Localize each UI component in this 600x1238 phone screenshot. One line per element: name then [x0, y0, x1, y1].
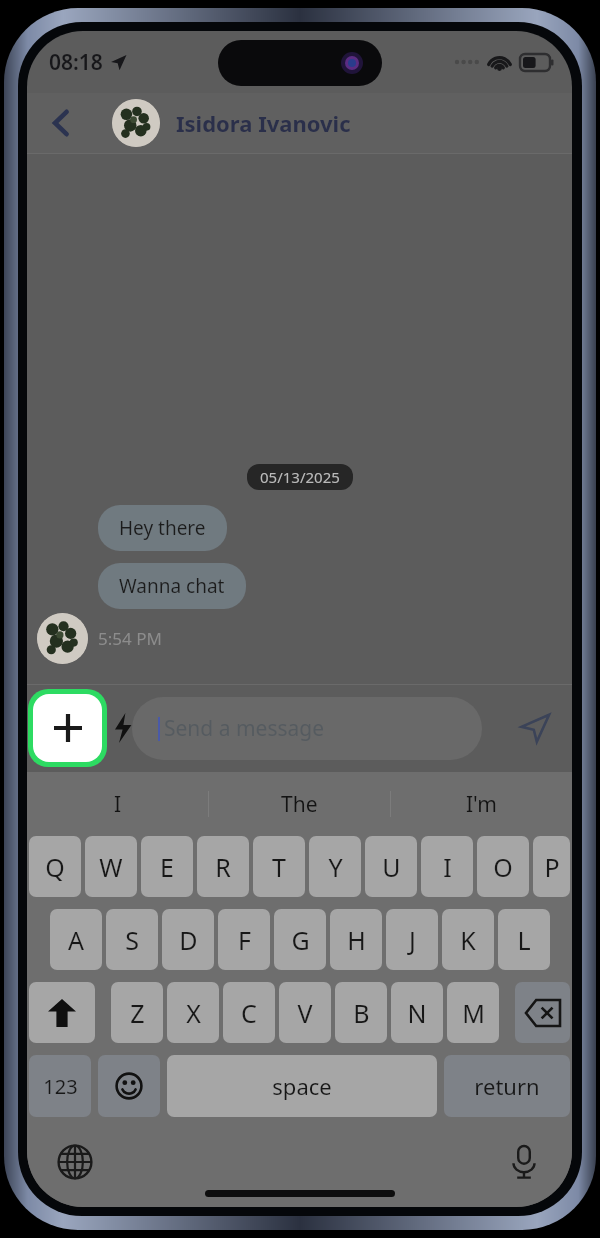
- button[interactable]: U: [365, 836, 417, 897]
- staticText: J: [409, 923, 416, 957]
- staticText: K: [460, 923, 476, 957]
- staticText: P: [544, 850, 560, 884]
- button[interactable]: 123: [29, 1055, 91, 1117]
- button[interactable]: S: [106, 909, 158, 970]
- staticText: 08:18: [49, 48, 103, 77]
- staticText: Q: [45, 850, 65, 884]
- button[interactable]: H: [330, 909, 382, 970]
- staticText: G: [291, 923, 310, 957]
- button[interactable]: D: [162, 909, 214, 970]
- button[interactable]: A: [50, 909, 102, 970]
- button[interactable]: I: [421, 836, 473, 897]
- button[interactable]: Z: [111, 982, 163, 1043]
- button[interactable]: [98, 1055, 160, 1117]
- button[interactable]: G: [274, 909, 326, 970]
- button[interactable]: T: [253, 836, 305, 897]
- staticText: U: [382, 850, 401, 884]
- button[interactable]: P: [533, 836, 570, 897]
- staticText: I: [443, 850, 452, 884]
- staticText: X: [186, 996, 201, 1030]
- staticText: S: [125, 923, 139, 957]
- staticText: A: [68, 923, 84, 957]
- button[interactable]: [515, 982, 570, 1043]
- button[interactable]: N: [391, 982, 443, 1043]
- button[interactable]: I'm: [391, 772, 572, 836]
- button[interactable]: Q: [29, 836, 81, 897]
- button[interactable]: return: [444, 1055, 570, 1117]
- button[interactable]: X: [167, 982, 219, 1043]
- button[interactable]: V: [279, 982, 331, 1043]
- staticText: Wanna chat: [119, 573, 225, 599]
- staticText: R: [215, 850, 231, 884]
- button[interactable]: Add attachment: [33, 694, 102, 762]
- button[interactable]: Dictate: [500, 1138, 548, 1186]
- staticText: I'm: [466, 790, 497, 819]
- button[interactable]: Change keyboard: [51, 1138, 99, 1186]
- staticText: I: [114, 790, 122, 819]
- staticText: Z: [130, 996, 145, 1030]
- staticText: D: [179, 923, 198, 957]
- staticText: M: [462, 996, 485, 1030]
- staticText: N: [407, 996, 427, 1030]
- button[interactable]: F: [218, 909, 270, 970]
- staticText: Hey there: [119, 515, 206, 541]
- button[interactable]: The: [209, 772, 390, 836]
- button[interactable]: O: [477, 836, 529, 897]
- staticText: space: [272, 1071, 332, 1101]
- button[interactable]: B: [335, 982, 387, 1043]
- button[interactable]: E: [141, 836, 193, 897]
- staticText: W: [99, 850, 123, 884]
- button[interactable]: K: [442, 909, 494, 970]
- staticText: F: [238, 923, 251, 957]
- button[interactable]: [29, 982, 95, 1043]
- staticText: C: [241, 996, 257, 1030]
- button[interactable]: Send: [506, 699, 564, 757]
- button[interactable]: I: [27, 772, 208, 836]
- button[interactable]: Wanna chat: [98, 563, 246, 609]
- button[interactable]: Isidora Ivanovic: [112, 99, 351, 147]
- staticText: 05/13/2025: [260, 467, 340, 487]
- button[interactable]: J: [386, 909, 438, 970]
- button[interactable]: M: [447, 982, 499, 1043]
- button[interactable]: W: [85, 836, 137, 897]
- button[interactable]: R: [197, 836, 249, 897]
- button[interactable]: C: [223, 982, 275, 1043]
- button[interactable]: space: [167, 1055, 437, 1117]
- staticText: E: [160, 850, 174, 884]
- button[interactable]: Y: [309, 836, 361, 897]
- staticText: The: [281, 790, 318, 819]
- staticText: H: [347, 923, 366, 957]
- staticText: B: [353, 996, 370, 1030]
- staticText: L: [517, 923, 531, 957]
- staticText: Send a message: [164, 714, 325, 743]
- button[interactable]: L: [498, 909, 550, 970]
- button[interactable]: Send a message: [132, 697, 482, 760]
- staticText: 5:54 PM: [98, 627, 162, 650]
- button[interactable]: Back: [39, 101, 83, 145]
- button[interactable]: Hey there: [98, 505, 227, 551]
- staticText: O: [493, 850, 513, 884]
- staticText: Y: [328, 850, 343, 884]
- staticText: V: [297, 996, 313, 1030]
- staticText: 123: [43, 1073, 78, 1100]
- staticText: return: [474, 1071, 540, 1101]
- staticText: Isidora Ivanovic: [176, 108, 351, 138]
- staticText: T: [272, 850, 286, 884]
